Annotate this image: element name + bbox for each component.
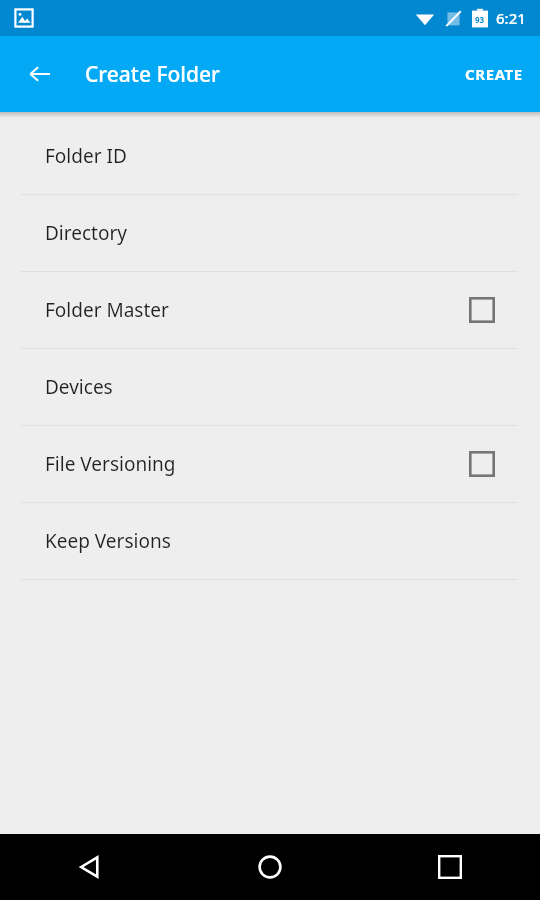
other: Folder Master: [469, 297, 495, 323]
button[interactable]: File Versioning: [0, 426, 540, 502]
button[interactable]: Folder ID: [0, 118, 540, 194]
button[interactable]: Recent apps: [360, 834, 540, 900]
staticText: Directory: [45, 220, 127, 246]
button[interactable]: Home: [180, 834, 360, 900]
button[interactable]: CREATE: [448, 36, 540, 112]
staticText: CREATE: [465, 64, 523, 84]
staticText: File Versioning: [45, 451, 176, 477]
button[interactable]: Navigate up: [16, 50, 64, 98]
button[interactable]: Directory: [0, 195, 540, 271]
staticText: 93: [475, 14, 485, 25]
staticText: Keep Versions: [45, 528, 171, 554]
staticText: 6:21: [496, 8, 526, 28]
staticText: Folder ID: [45, 143, 127, 169]
staticText: Create Folder: [85, 60, 220, 89]
other: File Versioning: [469, 451, 495, 477]
staticText: Folder Master: [45, 297, 169, 323]
button[interactable]: Back: [0, 834, 180, 900]
staticText: Devices: [45, 374, 113, 400]
button[interactable]: Folder Master: [0, 272, 540, 348]
button[interactable]: Keep Versions: [0, 503, 540, 579]
button[interactable]: Devices: [0, 349, 540, 425]
